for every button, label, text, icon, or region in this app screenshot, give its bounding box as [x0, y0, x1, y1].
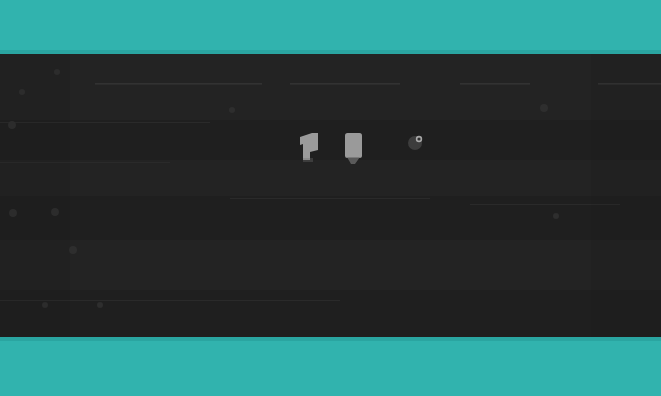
- button[interactable]: Content surface: [0, 0, 661, 396]
